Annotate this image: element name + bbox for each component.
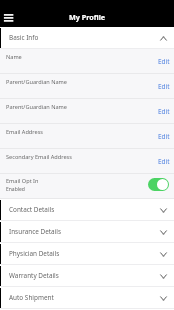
staticText: Auto Shipment: [9, 293, 54, 302]
staticText: Enabled: [6, 186, 25, 193]
button[interactable]: Name: [0, 49, 174, 74]
button[interactable]: Email Address: [0, 124, 174, 149]
staticText: Basic Info: [9, 33, 39, 42]
staticText: Edit: [158, 157, 170, 166]
staticText: Name: [6, 53, 22, 61]
staticText: Parent/Guardian Name: [6, 103, 68, 111]
staticText: Email Address: [6, 128, 43, 136]
button[interactable]: Basic Info: [0, 27, 174, 49]
staticText: Parent/Guardian Name: [6, 78, 68, 86]
staticText: Insurance Details: [9, 227, 62, 236]
button[interactable]: Physician Details: [0, 243, 174, 265]
button[interactable]: Parent/Guardian Name: [0, 99, 174, 124]
button[interactable]: Email Opt In: [0, 174, 174, 199]
button[interactable]: Auto Shipment: [0, 287, 174, 309]
button[interactable]: Menu: [1, 4, 21, 24]
staticText: Email Opt In: [6, 177, 39, 185]
staticText: Secondary Email Address: [6, 153, 72, 161]
staticText: Edit: [158, 132, 170, 141]
button[interactable]: Warranty Details: [0, 265, 174, 287]
button[interactable]: Insurance Details: [0, 221, 174, 243]
staticText: Edit: [158, 107, 170, 116]
button[interactable]: Contact Details: [0, 199, 174, 221]
button[interactable]: Email Opt In toggle: [148, 178, 169, 191]
staticText: Warranty Details: [9, 271, 59, 280]
button[interactable]: Secondary Email Address: [0, 149, 174, 174]
button[interactable]: Parent/Guardian Name: [0, 74, 174, 99]
staticText: Physician Details: [9, 249, 60, 258]
staticText: Edit: [158, 82, 170, 91]
staticText: Edit: [158, 57, 170, 66]
staticText: Contact Details: [9, 205, 55, 214]
staticText: My Profile: [69, 12, 106, 22]
